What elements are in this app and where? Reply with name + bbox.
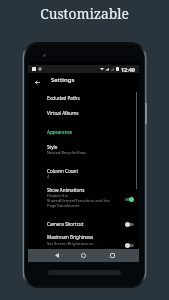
staticText: Excluded Paths: [47, 95, 80, 101]
staticText: Maximum Brightness: [47, 234, 94, 240]
staticText: 4: [47, 174, 50, 179]
staticText: Set Screen Brightness to ...: [47, 241, 98, 246]
button[interactable]: Back: [31, 76, 44, 89]
button[interactable]: Switch off: [121, 241, 137, 250]
button[interactable]: Home: [77, 249, 90, 262]
button[interactable]: Maximum Brightness: [28, 234, 139, 240]
button[interactable]: Virtual Albums: [28, 110, 139, 116]
button[interactable]: Camera Shortcut: [28, 221, 139, 227]
staticText: Settings: [51, 76, 75, 84]
button[interactable]: Switch on: [121, 195, 137, 204]
staticText: Show Animations: [47, 187, 85, 193]
staticText: Nested RecyclerView: [47, 150, 86, 155]
staticText: Style: [47, 144, 58, 150]
staticText: Column Count: [47, 168, 79, 174]
staticText: Virtual Albums: [47, 110, 79, 116]
button[interactable]: Column Count: [28, 168, 139, 174]
staticText: Camera Shortcut: [47, 221, 84, 227]
button[interactable]: Style: [28, 144, 139, 150]
button[interactable]: Excluded Paths: [28, 95, 139, 101]
button[interactable]: Switch off: [121, 220, 137, 229]
staticText: Appearance: [47, 129, 73, 135]
button[interactable]: Show Animations: [28, 187, 139, 193]
staticText: Disable the SharedElementTransition and …: [47, 193, 110, 208]
staticText: 12:49: [121, 66, 135, 73]
staticText: Customizable: [40, 4, 129, 23]
button[interactable]: Recent apps: [106, 249, 119, 262]
button[interactable]: Back: [50, 249, 63, 262]
